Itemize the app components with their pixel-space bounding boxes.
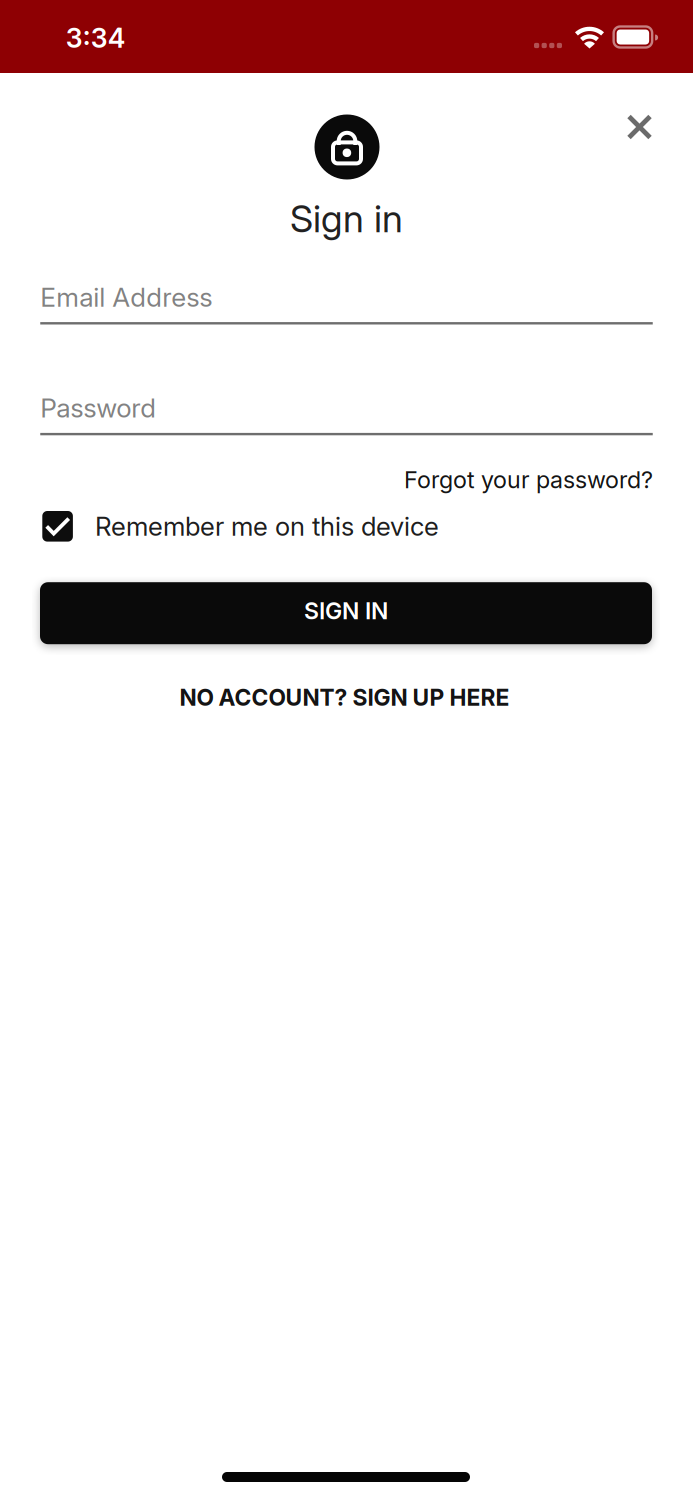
staticText: Email Address <box>40 281 212 313</box>
staticText: 3:34 <box>66 22 126 54</box>
staticText: Forgot your password? <box>404 466 653 494</box>
button[interactable]: Email Address <box>40 268 653 324</box>
staticText: NO ACCOUNT? SIGN UP HERE <box>179 684 509 711</box>
button[interactable]: SIGN IN <box>40 582 652 644</box>
staticText: Password <box>40 392 156 424</box>
staticText: Remember me on this device <box>95 511 439 542</box>
button[interactable]: Close <box>616 103 663 150</box>
button[interactable]: NO ACCOUNT? SIGN UP HERE <box>173 678 515 717</box>
button[interactable]: Password <box>40 379 653 435</box>
staticText: SIGN IN <box>304 597 388 625</box>
button[interactable]: Forgot your password? <box>404 466 653 494</box>
staticText: Sign in <box>290 196 403 241</box>
button[interactable]: Remember me on this device <box>40 511 652 542</box>
